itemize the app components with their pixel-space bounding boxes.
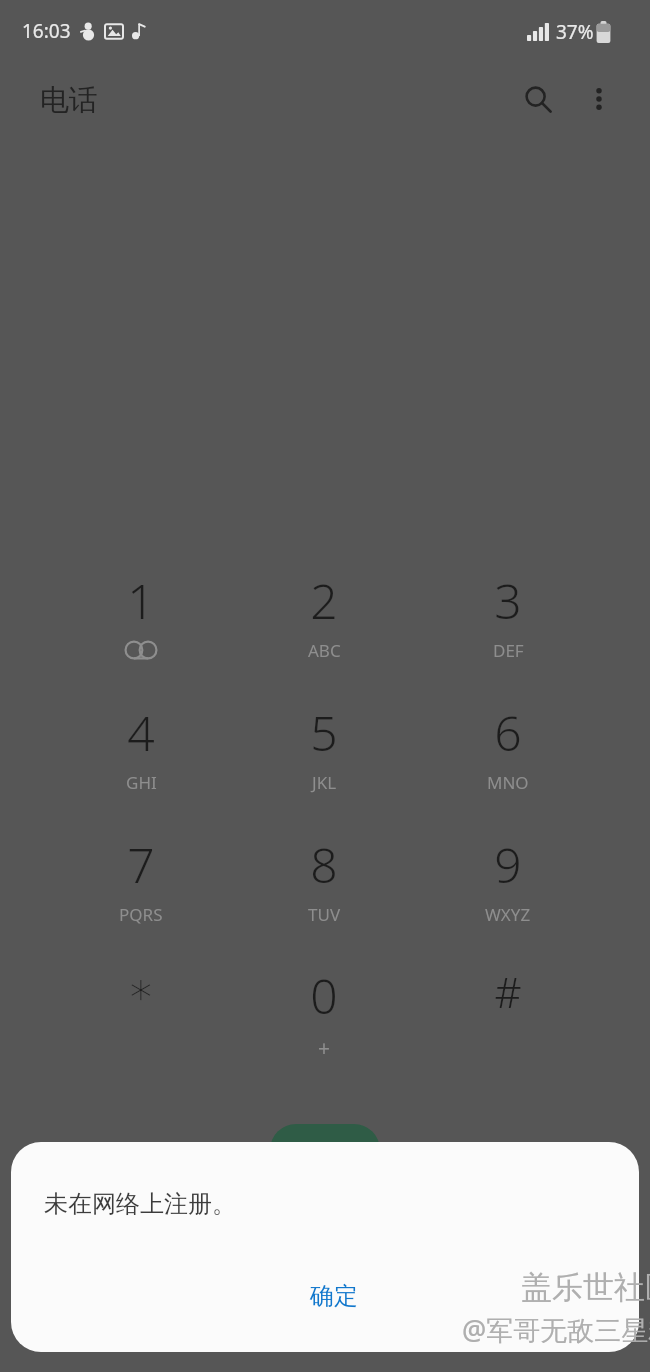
button[interactable]: 8 [249,832,399,962]
staticText: 6 [494,700,522,765]
staticText: WXYZ [485,903,531,926]
staticText: + [318,1034,331,1063]
button[interactable]: 7 [66,832,216,962]
staticText: 1 [127,568,155,633]
staticText: 电话 [40,82,98,119]
staticText: MNO [487,771,529,794]
staticText: JKL [312,771,337,794]
button[interactable]: Call [270,1124,380,1150]
staticText: 37% [556,19,594,45]
button[interactable]: 9 [433,832,583,962]
staticText: 0 [310,963,338,1028]
staticText: # [494,963,522,1020]
staticText: 未在网络上注册。 [44,1189,236,1219]
staticText: 3 [494,568,522,633]
staticText: @军哥无敌三星粉 [462,1311,650,1348]
staticText: DEF [493,639,524,662]
button[interactable]: 5 [249,700,399,830]
staticText: ABC [308,639,341,662]
staticText: 5 [310,700,338,765]
button[interactable]: More options [574,74,624,124]
staticText: 2 [310,568,338,633]
staticText: 4 [127,700,155,765]
button[interactable]: 0 [249,963,399,1093]
button[interactable]: 4 [66,700,216,830]
staticText: 8 [310,832,338,897]
staticText: TUV [308,903,341,926]
button[interactable]: 3 [433,568,583,698]
button[interactable]: 6 [433,700,583,830]
staticText: 确定 [310,1281,358,1311]
staticText: 16:03 [22,18,71,44]
staticText: ∗ [127,963,155,1014]
button[interactable]: 2 [249,568,399,698]
staticText: 盖乐世社区 [521,1268,650,1307]
staticText: 9 [494,832,522,897]
button[interactable]: # [433,963,583,1093]
staticText: PQRS [119,903,163,926]
staticText: GHI [126,771,157,794]
button[interactable]: 确定 [263,1260,405,1332]
button[interactable]: 1 [66,568,216,698]
staticText: 7 [127,832,155,897]
button[interactable]: Search [513,74,563,124]
